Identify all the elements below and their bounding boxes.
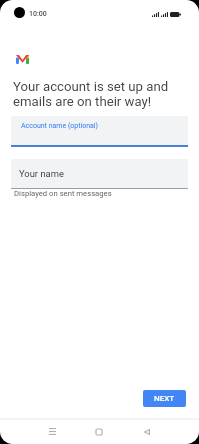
staticText: Your name xyxy=(19,168,64,179)
button[interactable]: Recent apps xyxy=(37,419,67,444)
staticText: Displayed on sent messages xyxy=(14,189,112,198)
button[interactable]: Home xyxy=(84,419,114,444)
other: Front camera xyxy=(14,7,25,18)
button[interactable]: NEXT xyxy=(143,390,186,407)
staticText: Account name (optional) xyxy=(21,122,99,130)
button[interactable]: Back xyxy=(132,419,162,444)
staticText: Your account is set up and emails are on… xyxy=(13,79,169,109)
staticText: NEXT xyxy=(154,394,175,403)
staticText: 10:00 xyxy=(29,10,47,18)
button[interactable]: Your name xyxy=(11,159,188,188)
button[interactable]: Account name (optional) xyxy=(11,116,188,145)
